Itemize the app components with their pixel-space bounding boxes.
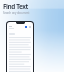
- staticText: Search any document: [3, 11, 30, 15]
- button[interactable]: Search: [9, 26, 31, 31]
- staticText: Find Text: [3, 2, 28, 11]
